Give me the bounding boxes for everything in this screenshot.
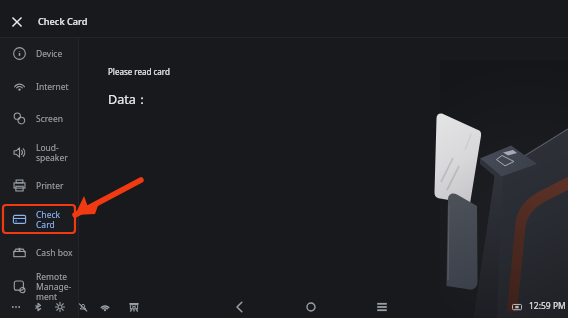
staticText: Printer	[36, 180, 64, 192]
staticText: Device	[36, 48, 63, 60]
button[interactable]: Card reader	[124, 296, 144, 318]
button[interactable]: More options	[6, 296, 26, 318]
button[interactable]: Bluetooth	[28, 296, 48, 318]
button[interactable]: Screenshot	[508, 296, 526, 318]
button[interactable]: Wi-Fi	[95, 296, 115, 318]
staticText: Please read card	[108, 66, 170, 77]
button[interactable]: Home	[301, 296, 321, 318]
staticText: Data：	[108, 91, 149, 108]
staticText: Screen	[36, 113, 63, 125]
button[interactable]: Notifications off	[73, 296, 93, 318]
staticText: Remote Manage- ment	[36, 271, 72, 302]
button[interactable]: Internet	[0, 71, 78, 102]
staticText: Check Card	[38, 15, 88, 28]
button[interactable]: Recents	[372, 296, 392, 318]
staticText: Loud- speaker	[36, 142, 68, 163]
button[interactable]: Printer	[0, 170, 78, 201]
button[interactable]: Check Card	[0, 202, 78, 236]
staticText: Cash box	[36, 247, 73, 259]
button[interactable]: Screen	[0, 103, 78, 134]
button[interactable]: Brightness	[50, 296, 70, 318]
button[interactable]: Device	[0, 38, 78, 69]
button[interactable]: Remote Manage- ment	[0, 265, 78, 307]
button[interactable]: Close	[0, 3, 34, 40]
staticText: Internet	[36, 81, 69, 93]
button[interactable]: Cash box	[0, 237, 78, 268]
button[interactable]: Back	[229, 296, 249, 318]
button[interactable]: Loud- speaker	[0, 135, 78, 169]
staticText: 12:59 PM	[529, 300, 566, 312]
staticText: Check Card	[36, 209, 61, 230]
